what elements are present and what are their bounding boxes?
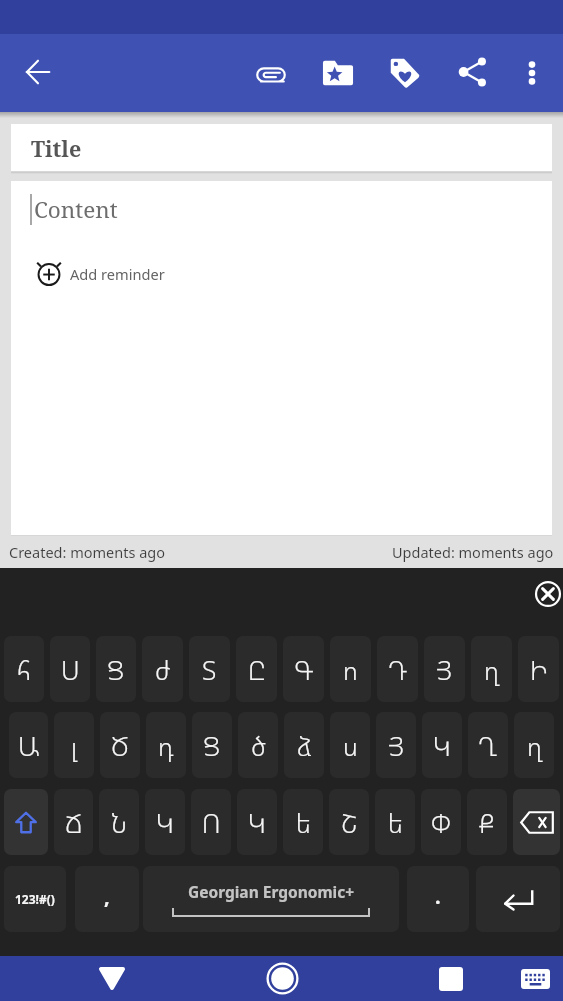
button[interactable]: Դ [377,636,418,702]
button[interactable]: ձ [284,712,324,778]
staticText: ղ [527,728,542,763]
button[interactable]: Dismiss keyboard [88,956,136,1001]
button[interactable]: Ն [99,789,139,855]
button[interactable]: Ք [467,789,507,855]
button[interactable]: Կ [422,712,462,778]
button[interactable]: ս [330,712,370,778]
staticText: Կ [156,805,174,840]
staticText: հ [17,652,31,687]
button[interactable]: Add reminder [36,262,165,285]
button[interactable]: ե [283,789,323,855]
staticText: ե [388,805,403,840]
button[interactable]: ո [330,636,371,702]
button[interactable]: ժ [142,636,183,702]
staticText: Georgian Ergonomic+ [188,881,355,902]
button[interactable]: , [75,866,139,932]
staticText: Ճ [65,805,83,840]
button[interactable]: Back [11,44,65,100]
button[interactable]: . [407,866,469,932]
button[interactable]: հ [4,636,44,702]
staticText: ո [343,652,358,687]
staticText: ձ [297,728,312,763]
button[interactable]: Ց [192,712,232,778]
button[interactable]: Share [446,44,500,100]
staticText: 123!#() [15,891,55,907]
button[interactable]: Կ [145,789,185,855]
staticText: ե [296,805,311,840]
button[interactable]: լ [54,712,94,778]
staticText: Updated: moments ago [392,542,554,562]
button[interactable]: Ծ [100,712,140,778]
button[interactable]: Ղ [468,712,508,778]
button[interactable]: Ը [236,636,277,702]
staticText: Created: moments ago [9,542,165,562]
button[interactable]: Georgian Ergonomic+ [143,866,399,932]
staticText: Ը [248,652,266,687]
staticText: Ց [107,652,125,687]
staticText: Ա [18,728,40,763]
button[interactable]: Ո [191,789,231,855]
staticText: Տ [202,652,217,687]
staticText: Add reminder [70,264,165,284]
staticText: . [435,883,441,910]
staticText: Ո [202,805,221,840]
staticText: Title [31,134,82,163]
button[interactable]: Գ [283,636,324,702]
button[interactable]: Ճ [54,789,93,855]
button[interactable]: Add label [378,45,432,101]
staticText: Ք [479,805,495,840]
button[interactable]: ղ [471,636,512,702]
button[interactable]: Յ [376,712,416,778]
button[interactable]: 123!#() [4,866,66,932]
button[interactable] [476,866,560,932]
button[interactable]: Ս [50,636,90,702]
staticText: Content [34,194,118,225]
staticText: Ց [203,728,221,763]
staticText: Յ [436,652,453,687]
button[interactable] [4,789,48,855]
button[interactable]: դ [146,712,186,778]
button[interactable]: ղ [514,712,554,778]
staticText: Կ [433,728,451,763]
staticText: ս [343,728,358,763]
staticText: , [104,883,110,910]
staticText: Ծ [111,728,129,763]
button[interactable]: Կ [237,789,277,855]
button[interactable]: Close keyboard [530,576,563,612]
staticText: ղ [484,652,499,687]
button[interactable]: ծ [238,712,278,778]
staticText: լ [71,728,78,763]
staticText: Ն [111,805,127,840]
button[interactable] [513,789,560,855]
button[interactable]: Recents [427,956,475,1001]
staticText: Փ [431,805,451,840]
staticText: Շ [341,805,358,840]
staticText: Կ [248,805,266,840]
staticText: Ղ [478,728,498,763]
staticText: ծ [251,728,266,763]
button[interactable]: Title [11,124,552,172]
staticText: Յ [388,728,405,763]
staticText: Գ [294,652,314,687]
button[interactable]: Home [258,956,306,1001]
button[interactable]: Ց [96,636,136,702]
button[interactable]: Switch keyboard [511,956,559,1001]
staticText: Ի [530,652,548,687]
button[interactable]: Content [11,181,552,536]
staticText: Ս [61,652,80,687]
staticText: դ [158,728,174,763]
staticText: ժ [155,652,170,687]
button[interactable]: Ա [9,712,48,778]
staticText: Դ [388,652,408,687]
button[interactable]: More options [505,45,559,101]
button[interactable]: Փ [421,789,461,855]
button[interactable]: Ի [518,636,559,702]
button[interactable]: Տ [189,636,230,702]
button[interactable]: Attach file [244,46,298,102]
button[interactable]: ե [375,789,415,855]
button[interactable]: Յ [424,636,465,702]
button[interactable]: Move to folder [311,45,365,101]
button[interactable]: Շ [329,789,369,855]
